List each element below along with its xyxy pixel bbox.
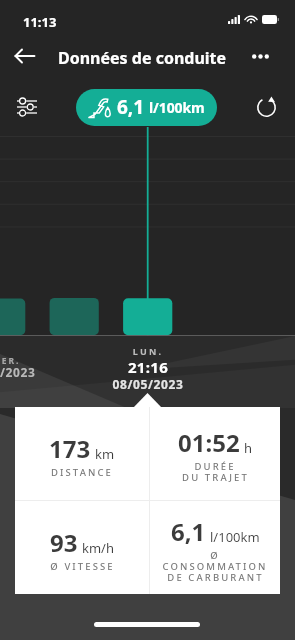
button[interactable]: 6,1 [76, 89, 217, 126]
button[interactable]: 173 [15, 407, 149, 500]
staticText: 01:52 [178, 426, 240, 459]
staticText: 173 [49, 432, 91, 465]
staticText: l/100km [149, 98, 205, 117]
button[interactable]: Filter [8, 88, 46, 126]
button[interactable]: MER. [0, 336, 68, 408]
staticText: 93 [50, 526, 78, 559]
staticText: CONSOMMATION [162, 560, 268, 571]
button[interactable]: 01:52 [150, 407, 280, 500]
button[interactable]: More options [240, 36, 280, 76]
staticText: Ø [210, 549, 220, 560]
staticText: DISTANCE [51, 466, 113, 477]
staticText: DU TRAJET [182, 471, 249, 482]
staticText: h [244, 439, 253, 457]
staticText: 21:16 [73, 357, 223, 377]
staticText: 11:13 [23, 13, 57, 31]
staticText: LUN. [73, 345, 223, 357]
staticText: 08/05/2023 [73, 376, 223, 392]
staticText: MER. [0, 355, 81, 367]
staticText: 6,1 [171, 515, 206, 548]
button[interactable]: 6,1 [150, 501, 280, 594]
button[interactable]: Refresh [247, 88, 285, 126]
staticText: Données de conduite [58, 47, 227, 69]
staticText: 6,1 [117, 94, 145, 120]
staticText: DURÉE [194, 460, 236, 471]
button[interactable]: Back [4, 36, 44, 76]
staticText: km/h [82, 539, 114, 557]
button[interactable]: 93 [15, 501, 149, 594]
staticText: l/100km [210, 528, 260, 546]
staticText: 03/05/2023 [0, 364, 75, 380]
staticText: Ø VITESSE [50, 560, 115, 571]
staticText: km [95, 445, 115, 463]
button[interactable]: LUN. [73, 336, 223, 408]
staticText: DE CARBURANT [167, 571, 264, 582]
